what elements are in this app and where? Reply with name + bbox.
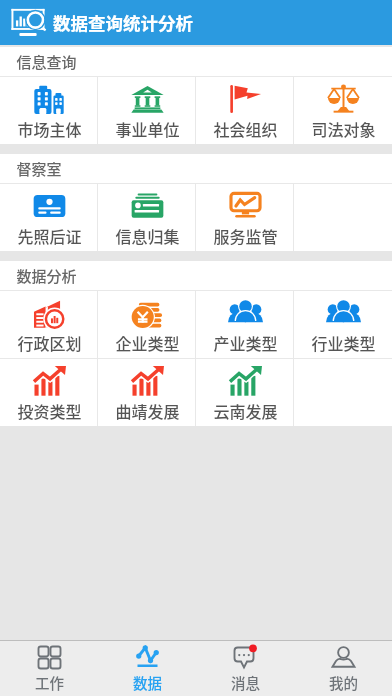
staticText: 社会组织 [213,117,278,140]
button[interactable]: 信息归集 [98,184,196,251]
button[interactable]: 消息 [196,641,294,696]
staticText: 消息 [231,672,260,693]
button[interactable]: 产业类型 [196,291,294,358]
staticText: 督察室 [16,158,62,180]
staticText: 我的 [329,672,358,693]
staticText: 行业类型 [311,331,376,354]
button[interactable]: 先照后证 [0,184,98,251]
button[interactable]: 数据 [98,641,196,696]
staticText: 数据查询统计分析 [53,10,193,35]
staticText: 数据分析 [16,265,77,287]
button[interactable]: 行政区划 [0,291,98,358]
staticText: 事业单位 [115,117,180,140]
button[interactable]: 司法对象 [294,77,392,144]
button[interactable]: 云南发展 [196,359,294,426]
staticText: 信息查询 [16,51,77,73]
staticText: 云南发展 [213,399,278,422]
button[interactable]: 事业单位 [98,77,196,144]
staticText: 投资类型 [17,399,82,422]
staticText: 信息归集 [115,224,180,247]
staticText: 曲靖发展 [115,399,180,422]
staticText: 行政区划 [17,331,82,354]
staticText: 数据 [133,672,162,693]
button[interactable]: Logo [10,8,46,38]
button[interactable]: 工作 [0,641,98,696]
staticText: 产业类型 [213,331,278,354]
staticText: 先照后证 [17,224,82,247]
button[interactable]: 社会组织 [196,77,294,144]
button[interactable]: 服务监管 [196,184,294,251]
staticText: 服务监管 [213,224,278,247]
button[interactable]: 市场主体 [0,77,98,144]
button[interactable]: 投资类型 [0,359,98,426]
staticText: 司法对象 [311,117,376,140]
button[interactable]: 行业类型 [294,291,392,358]
button[interactable]: 曲靖发展 [98,359,196,426]
staticText: 工作 [35,672,64,693]
staticText: 企业类型 [115,331,180,354]
button[interactable]: 我的 [294,641,392,696]
staticText: 市场主体 [17,117,82,140]
button[interactable]: 企业类型 [98,291,196,358]
